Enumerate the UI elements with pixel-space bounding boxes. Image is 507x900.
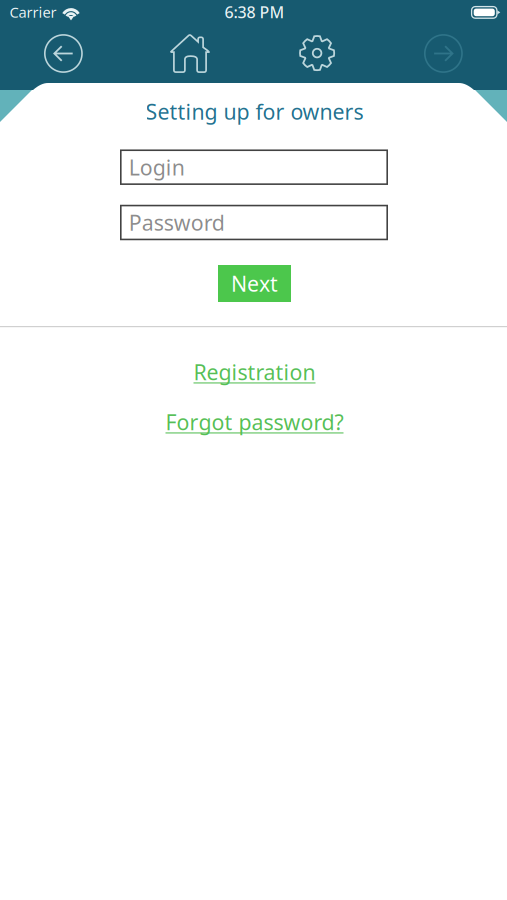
staticText: Registration — [193, 358, 315, 386]
staticText: Next — [231, 269, 278, 298]
button[interactable]: Registration — [189, 357, 319, 387]
staticText: Password — [129, 208, 225, 237]
staticText: Login — [129, 153, 185, 181]
button[interactable]: Forward — [388, 24, 498, 82]
button[interactable]: Back — [8, 24, 118, 82]
staticText: Setting up for owners — [145, 97, 363, 126]
staticText: 6:38 PM — [224, 1, 284, 23]
button[interactable]: Next — [218, 265, 291, 302]
staticText: Carrier — [9, 2, 56, 22]
button[interactable]: Forgot password? — [159, 407, 349, 437]
button[interactable]: Home — [135, 24, 245, 82]
button[interactable]: Settings — [262, 24, 372, 82]
staticText: Forgot password? — [165, 408, 343, 436]
